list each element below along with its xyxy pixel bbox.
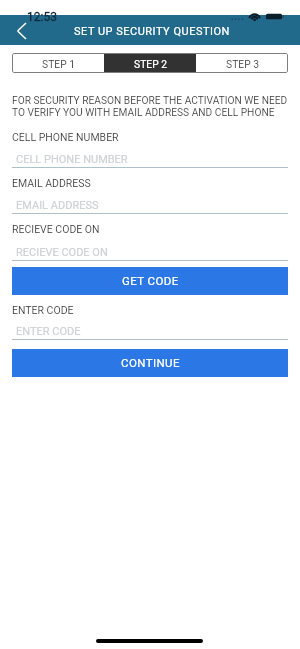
button[interactable]: ENTER CODE (12, 322, 288, 339)
staticText: CELL PHONE NUMBER (16, 153, 128, 166)
button[interactable]: CELL PHONE NUMBER (12, 150, 288, 167)
button[interactable]: CONTINUE (12, 349, 288, 377)
staticText: EMAIL ADDRESS (12, 177, 91, 189)
button[interactable]: EMAIL ADDRESS (12, 196, 288, 213)
button[interactable]: Back (0, 15, 44, 45)
button[interactable]: STEP 2 (104, 53, 196, 73)
staticText: ENTER CODE (16, 325, 81, 338)
staticText: STEP 3 (226, 58, 259, 70)
staticText: CONTINUE (121, 356, 180, 369)
staticText: 12:53 (27, 10, 57, 24)
button[interactable]: STEP 3 (196, 53, 288, 73)
staticText: RECIEVE CODE ON (16, 246, 108, 259)
staticText: RECIEVE CODE ON (12, 223, 100, 235)
button[interactable]: RECIEVE CODE ON (12, 243, 288, 260)
button[interactable]: GET CODE (12, 267, 288, 295)
staticText: STEP 1 (42, 58, 75, 70)
button[interactable]: STEP 1 (12, 53, 104, 73)
staticText: EMAIL ADDRESS (16, 199, 99, 212)
staticText: CELL PHONE NUMBER (12, 131, 119, 143)
staticText: ENTER CODE (12, 304, 74, 316)
staticText: SET UP SECURITY QUESTION (74, 25, 230, 38)
staticText: STEP 2 (134, 58, 167, 70)
staticText: FOR SECURITY REASON BEFORE THE ACTIVATIO… (12, 95, 288, 119)
staticText: GET CODE (122, 274, 179, 287)
